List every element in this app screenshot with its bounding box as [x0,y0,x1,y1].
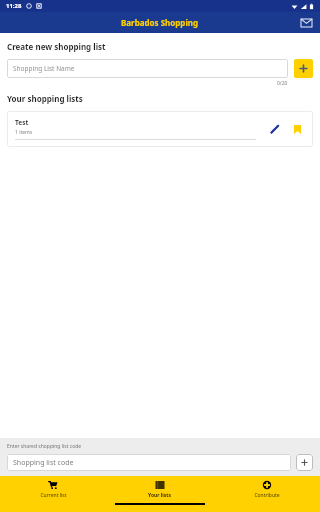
button[interactable]: Messages [298,15,314,31]
button[interactable]: Edit list [267,121,283,137]
button[interactable]: Shopping list code [7,454,291,471]
staticText: Contribute [254,492,280,499]
staticText: Create new shopping list [7,41,106,52]
staticText: Current list [40,492,67,499]
staticText: 0/20 [277,80,288,87]
staticText: Your shopping lists [7,93,83,104]
button[interactable]: Test [7,111,313,147]
button[interactable]: Contribute [213,479,320,500]
button[interactable]: Shopping List Name [7,59,288,78]
button[interactable]: Join shared list [296,454,313,471]
button[interactable]: Current list [0,479,106,500]
staticText: Test [15,118,29,127]
staticText: 11:28 [6,2,22,10]
staticText: Enter shared shopping list code [7,443,82,450]
button[interactable]: Your lists [106,479,213,500]
staticText: Shopping list code [13,458,74,468]
button[interactable]: Bookmark list [289,121,305,137]
button[interactable]: Add shopping list [294,59,313,78]
staticText: Your lists [148,492,171,499]
staticText: Shopping List Name [13,64,75,73]
staticText: Barbados Shopping [121,17,199,28]
staticText: 1 items [15,129,33,136]
